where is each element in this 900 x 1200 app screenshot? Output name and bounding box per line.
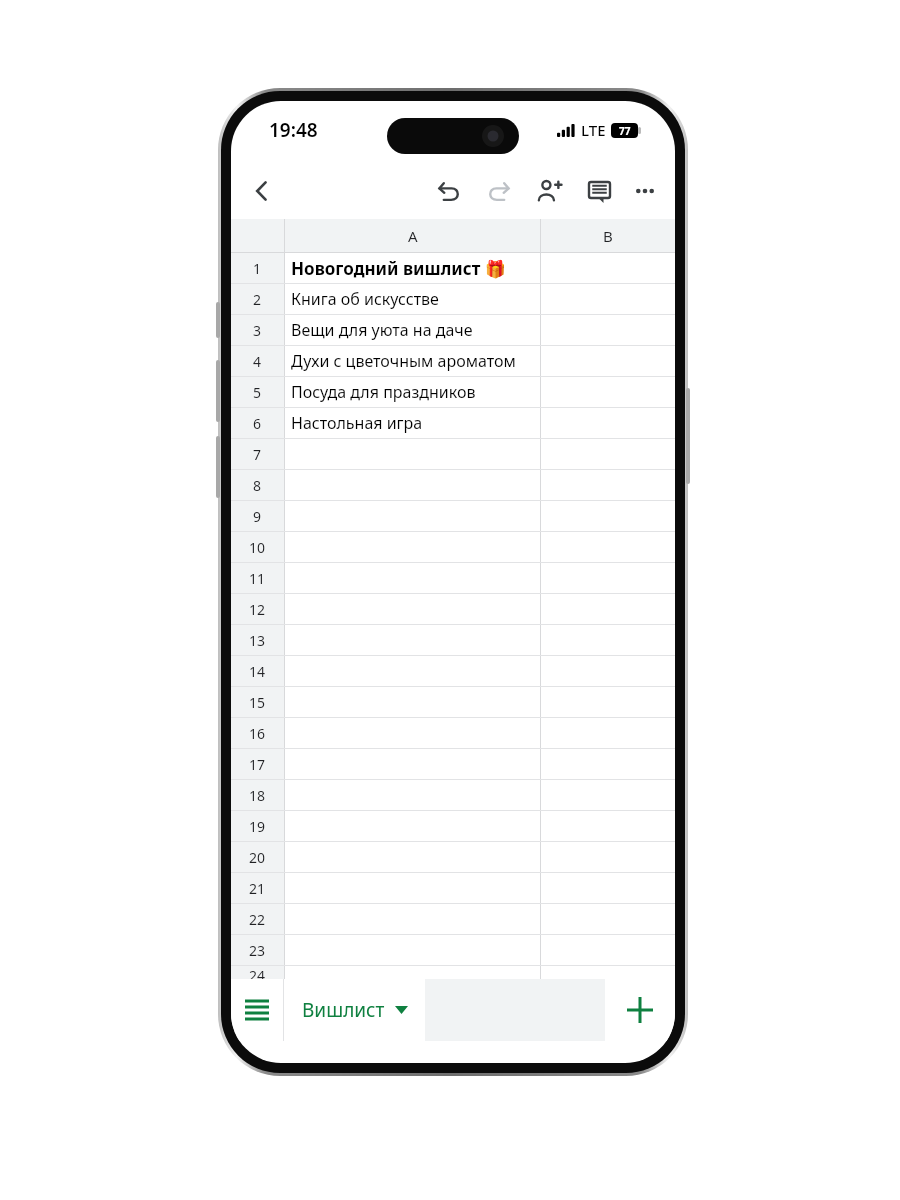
staticText: 1 [253, 259, 262, 278]
staticText: 3 [253, 321, 262, 340]
button[interactable]: Add sheet [605, 979, 675, 1041]
staticText: 14 [249, 662, 266, 681]
staticText: LTE [581, 120, 606, 140]
staticText: 10 [249, 538, 266, 557]
staticText: Вишлист [302, 997, 385, 1023]
staticText: Настольная игра [291, 412, 423, 434]
button[interactable]: Redo [477, 169, 521, 213]
staticText: 2 [253, 290, 262, 309]
staticText: 22 [249, 910, 266, 929]
button[interactable]: Вишлист [284, 979, 425, 1041]
staticText: 12 [249, 600, 266, 619]
staticText: 6 [253, 414, 262, 433]
button[interactable]: All sheets [231, 979, 283, 1041]
staticText: 19 [249, 817, 266, 836]
button[interactable]: Undo [427, 169, 471, 213]
staticText: 21 [249, 879, 266, 898]
staticText: 7 [253, 445, 262, 464]
button[interactable]: More options [623, 169, 667, 213]
staticText: 9 [253, 507, 262, 526]
staticText: B [603, 226, 613, 246]
button[interactable]: Comments [577, 169, 621, 213]
button[interactable]: Back [239, 168, 285, 214]
staticText: Духи с цветочным ароматом [291, 350, 516, 372]
staticText: 77 [619, 124, 631, 138]
staticText: 20 [249, 848, 266, 867]
staticText: 13 [249, 631, 266, 650]
button[interactable]: Духи с цветочным ароматом [285, 346, 540, 376]
staticText: Новогодний вишлист 🎁 [291, 257, 506, 280]
staticText: 11 [249, 569, 266, 588]
staticText: 5 [253, 383, 262, 402]
staticText: 8 [253, 476, 262, 495]
staticText: 15 [249, 693, 266, 712]
staticText: 18 [249, 786, 266, 805]
staticText: 19:48 [269, 117, 318, 143]
staticText: 4 [253, 352, 262, 371]
button[interactable]: Вещи для уюта на даче [285, 315, 540, 345]
button[interactable]: Книга об искусстве [285, 284, 540, 314]
staticText: A [408, 226, 418, 246]
staticText: 24 [249, 966, 266, 979]
staticText: Вещи для уюта на даче [291, 319, 473, 341]
staticText: 17 [249, 755, 266, 774]
staticText: 23 [249, 941, 266, 960]
staticText: 16 [249, 724, 266, 743]
button[interactable]: Посуда для праздников [285, 377, 540, 407]
button[interactable]: Новогодний вишлист 🎁 [285, 253, 540, 283]
button[interactable]: Share [527, 169, 571, 213]
staticText: Книга об искусстве [291, 288, 439, 310]
button[interactable]: Настольная игра [285, 408, 540, 438]
staticText: Посуда для праздников [291, 381, 476, 403]
